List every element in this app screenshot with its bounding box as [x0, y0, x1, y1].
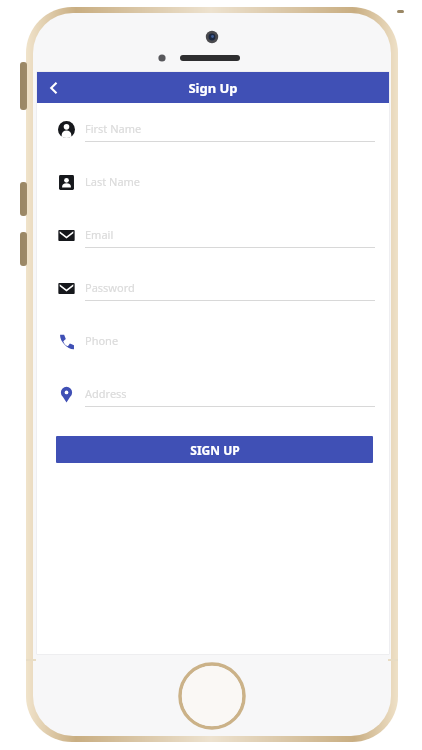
staticText: Sign Up: [188, 79, 238, 97]
button[interactable]: Address: [37, 379, 389, 432]
staticText: Last Name: [85, 174, 141, 189]
button[interactable]: SIGN UP: [56, 436, 373, 463]
staticText: Address: [85, 386, 127, 401]
button[interactable]: Last Name: [37, 167, 389, 220]
button[interactable]: Back: [37, 72, 71, 103]
button[interactable]: Email: [37, 220, 389, 273]
staticText: SIGN UP: [190, 442, 240, 458]
button[interactable]: Phone: [37, 326, 389, 379]
staticText: Email: [85, 227, 114, 242]
staticText: First Name: [85, 121, 142, 136]
staticText: Phone: [85, 333, 119, 348]
staticText: Password: [85, 280, 135, 295]
button[interactable]: Password: [37, 273, 389, 326]
button[interactable]: First Name: [37, 114, 389, 167]
